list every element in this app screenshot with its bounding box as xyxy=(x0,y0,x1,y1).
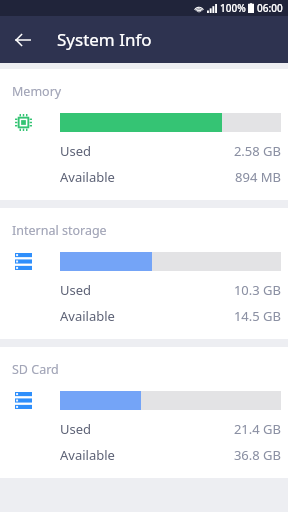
staticText: Available xyxy=(60,168,115,186)
staticText: System Info xyxy=(57,28,152,51)
staticText: 36.8 GB xyxy=(233,446,281,464)
staticText: Used xyxy=(60,142,92,160)
button[interactable]: SD Card xyxy=(0,347,288,478)
button[interactable]: Back xyxy=(10,27,36,53)
staticText: 894 MB xyxy=(235,168,281,186)
staticText: Memory xyxy=(12,83,62,100)
button[interactable]: Memory xyxy=(0,69,288,200)
staticText: 14.5 GB xyxy=(233,307,281,325)
staticText: 06:00 xyxy=(257,1,283,15)
staticText: Available xyxy=(60,446,115,464)
staticText: 2.58 GB xyxy=(233,142,281,160)
staticText: SD Card xyxy=(12,361,59,378)
staticText: Used xyxy=(60,420,92,438)
staticText: Used xyxy=(60,281,92,299)
staticText: 10.3 GB xyxy=(233,281,281,299)
staticText: 21.4 GB xyxy=(233,420,281,438)
staticText: Internal storage xyxy=(12,222,107,239)
staticText: 100% xyxy=(220,1,246,15)
button[interactable]: Internal storage xyxy=(0,208,288,339)
staticText: Available xyxy=(60,307,115,325)
